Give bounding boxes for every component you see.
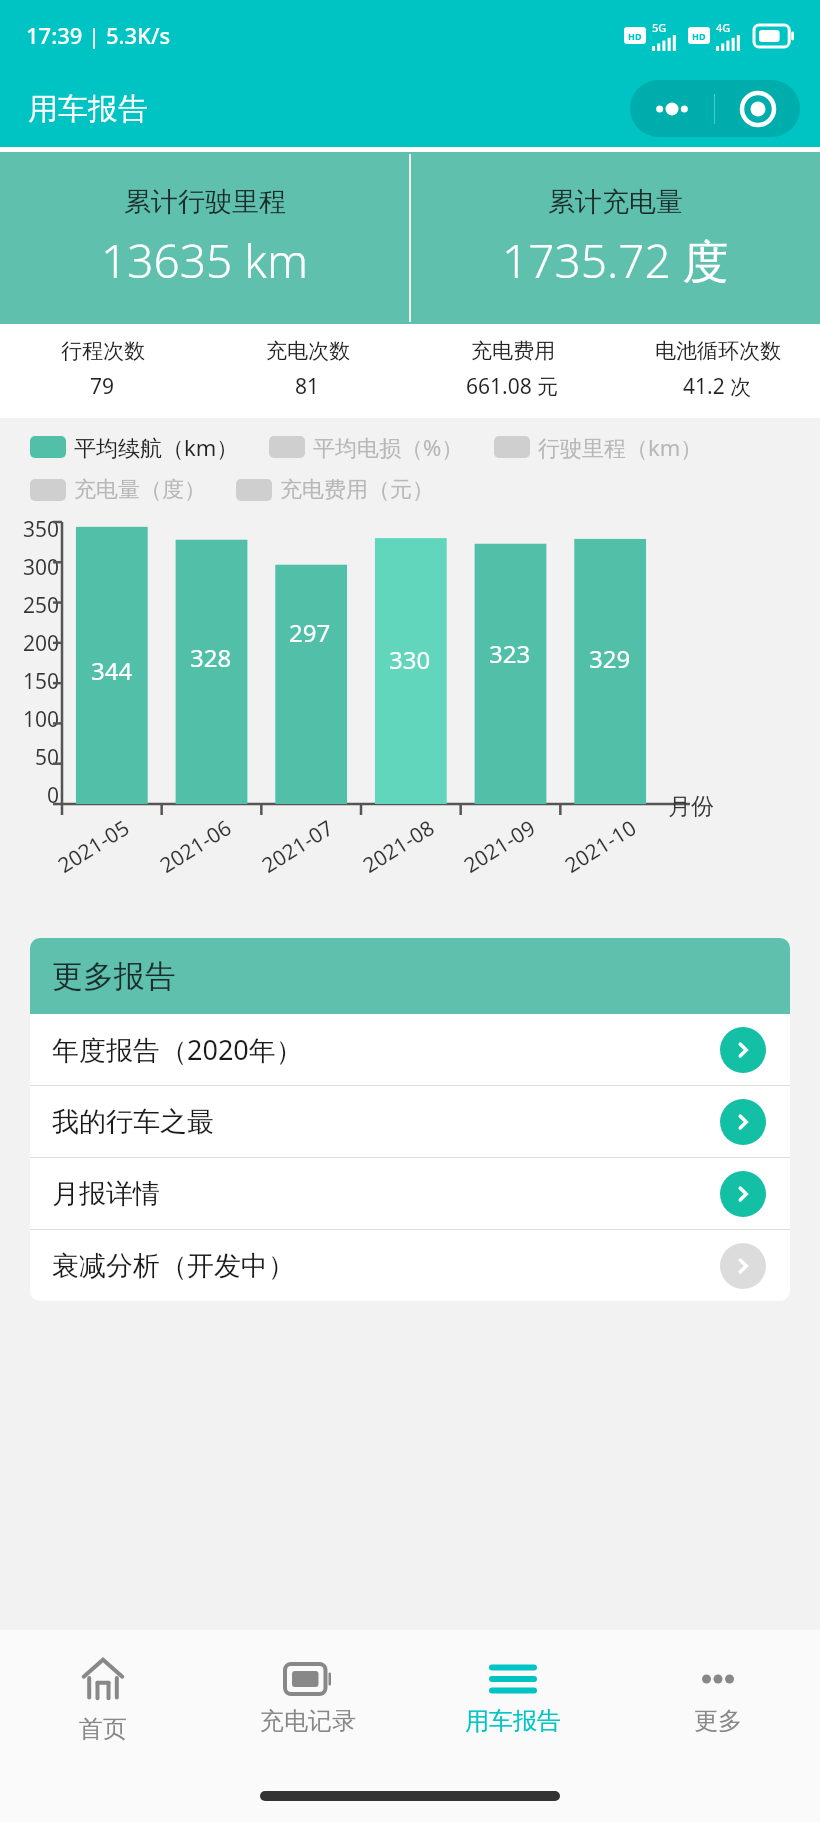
staticText: 2021-05 — [52, 813, 135, 880]
staticText: 我的行车之最 — [52, 1105, 214, 1139]
button[interactable]: 行程次数 — [0, 324, 205, 414]
staticText: 344 — [91, 654, 133, 687]
staticText: 200 — [23, 629, 60, 658]
staticText: 平均电损（%） — [313, 432, 464, 462]
staticText: 更多报告 — [52, 957, 176, 996]
button[interactable]: 充电量（度） — [30, 476, 206, 504]
button[interactable]: 充电费用（元） — [236, 476, 434, 504]
button[interactable]: 电池循环次数 — [615, 324, 820, 414]
button[interactable]: 我的行车之最 — [30, 1086, 790, 1157]
staticText: 100 — [23, 705, 60, 734]
staticText: 2021-08 — [357, 813, 440, 880]
staticText: 150 — [23, 667, 60, 696]
button[interactable]: 首页 — [0, 1630, 205, 1770]
staticText: 累计充电量 — [548, 185, 683, 219]
button[interactable]: 年度报告（2020年） — [30, 1014, 790, 1085]
staticText: 50 — [35, 743, 60, 772]
staticText: 月份 — [668, 792, 714, 821]
staticText: 充电费用（元） — [280, 476, 434, 504]
button[interactable]: Record — [715, 80, 800, 137]
staticText: 329 — [589, 642, 631, 675]
staticText: 79 — [90, 372, 115, 401]
staticText: 2021-07 — [256, 813, 339, 880]
button[interactable]: More options — [630, 80, 800, 137]
staticText: HD — [692, 30, 706, 42]
staticText: 充电量（度） — [74, 476, 206, 504]
button[interactable]: 平均续航（km） — [30, 432, 239, 462]
button[interactable]: 平均电损（%） — [269, 432, 464, 462]
staticText: 297 — [289, 616, 331, 649]
staticText: 用车报告 — [465, 1706, 561, 1736]
button[interactable]: 用车报告 — [410, 1630, 615, 1770]
staticText: 323 — [489, 637, 531, 670]
button[interactable]: 充电记录 — [205, 1630, 410, 1770]
button[interactable]: 累计行驶里程 — [0, 152, 409, 324]
staticText: 81 — [295, 372, 320, 401]
staticText: 300 — [23, 553, 60, 582]
button[interactable]: 更多 — [615, 1630, 820, 1770]
button[interactable]: 月报详情 — [30, 1158, 790, 1229]
staticText: 行程次数 — [61, 338, 145, 364]
staticText: 充电记录 — [260, 1706, 356, 1736]
staticText: 更多 — [694, 1706, 742, 1736]
staticText: 4G — [716, 20, 731, 35]
staticText: 充电费用 — [471, 338, 555, 364]
staticText: 平均续航（km） — [74, 432, 239, 462]
button[interactable]: 衰减分析（开发中） — [30, 1230, 790, 1301]
button[interactable]: 累计充电量 — [411, 152, 820, 324]
staticText: 328 — [190, 641, 232, 674]
button[interactable]: 行驶里程（km） — [494, 432, 703, 462]
staticText: 1735.72 度 — [502, 229, 729, 292]
staticText: 充电次数 — [266, 338, 350, 364]
button[interactable]: More options — [630, 80, 714, 137]
staticText: 电池循环次数 — [655, 338, 781, 364]
staticText: 5G — [652, 20, 667, 35]
button[interactable]: 充电费用 — [410, 324, 615, 414]
staticText: 2021-09 — [458, 813, 541, 880]
staticText: 首页 — [79, 1714, 127, 1744]
staticText: 41.2 次 — [683, 372, 752, 401]
staticText: 350 — [23, 515, 60, 544]
staticText: 2021-06 — [154, 813, 237, 880]
staticText: 年度报告（2020年） — [52, 1031, 303, 1068]
staticText: 661.08 元 — [466, 372, 559, 401]
staticText: 250 — [23, 591, 60, 620]
staticText: 0 — [47, 781, 60, 810]
staticText: 衰减分析（开发中） — [52, 1249, 295, 1283]
staticText: 月报详情 — [52, 1177, 160, 1211]
staticText: HD — [628, 30, 642, 42]
staticText: 17:39 | 5.3K/s — [26, 20, 171, 50]
staticText: 13635 km — [101, 229, 309, 292]
staticText: 行驶里程（km） — [538, 432, 703, 462]
button[interactable]: 充电次数 — [205, 324, 410, 414]
staticText: 330 — [389, 643, 431, 676]
staticText: 2021-10 — [559, 813, 642, 880]
staticText: 累计行驶里程 — [124, 185, 286, 219]
staticText: 用车报告 — [28, 90, 148, 128]
